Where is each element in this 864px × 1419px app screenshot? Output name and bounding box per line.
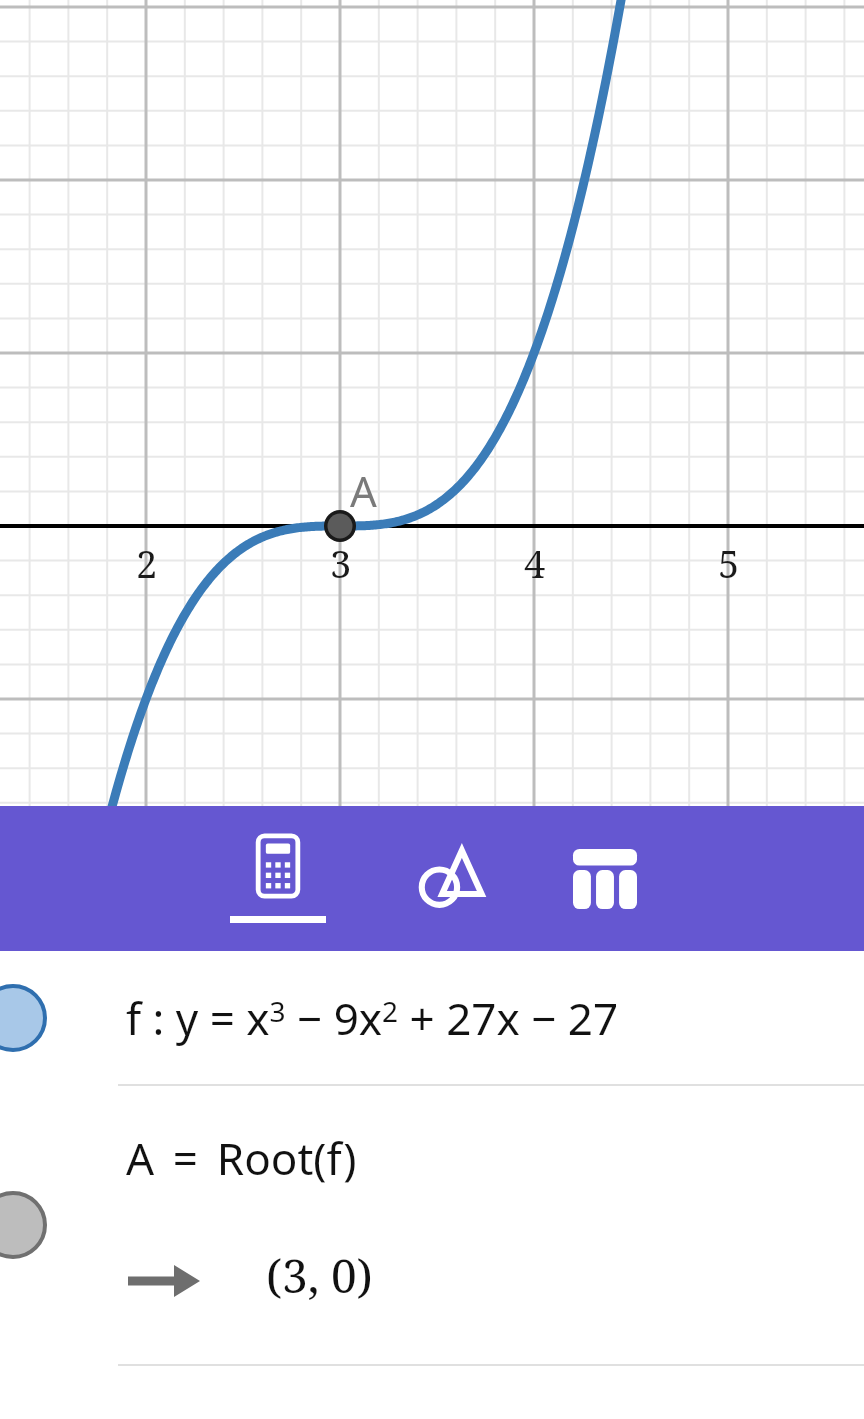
staticText: 5 (718, 537, 740, 589)
button[interactable]: Calculator (204, 806, 352, 951)
button[interactable]: A = Root(f) (0, 1086, 864, 1364)
staticText: 4 (524, 537, 546, 589)
staticText: 2 (136, 537, 158, 589)
staticText: 3 (330, 537, 352, 589)
button[interactable]: Table (550, 806, 660, 951)
button[interactable]: f : y = x3 − 9x2 + 27x − 27 (0, 951, 864, 1084)
staticText: A (350, 462, 377, 519)
staticText: f : y = x3 − 9x2 + 27x − 27 (126, 988, 619, 1048)
button[interactable]: 2 (0, 0, 864, 806)
button[interactable]: Geometry (396, 806, 506, 951)
staticText: A = Root(f) (126, 1128, 357, 1188)
staticText: (3, 0) (266, 1244, 373, 1307)
